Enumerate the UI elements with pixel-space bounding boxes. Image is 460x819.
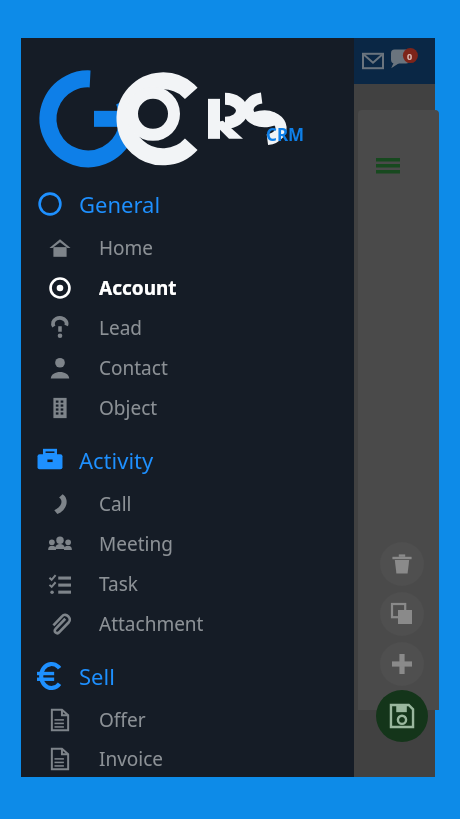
- button[interactable]: General: [21, 180, 354, 228]
- button[interactable]: Account: [21, 268, 354, 308]
- button[interactable]: Meeting: [21, 524, 354, 564]
- staticText: Lead: [99, 315, 143, 341]
- button[interactable]: Messages: [360, 48, 386, 74]
- button[interactable]: Object: [21, 388, 354, 428]
- button[interactable]: Attachment: [21, 604, 354, 644]
- staticText: Attachment: [99, 611, 204, 637]
- button[interactable]: Copy: [380, 592, 424, 636]
- staticText: Meeting: [99, 531, 173, 557]
- button[interactable]: Home: [21, 228, 354, 268]
- staticText: Account: [99, 275, 177, 301]
- button[interactable]: Task: [21, 564, 354, 604]
- staticText: Object: [99, 395, 158, 421]
- staticText: General: [79, 189, 161, 219]
- button[interactable]: Sell: [21, 652, 354, 700]
- button[interactable]: Menu: [368, 146, 408, 186]
- staticText: 0: [407, 50, 413, 62]
- button[interactable]: Lead: [21, 308, 354, 348]
- button[interactable]: Offer: [21, 700, 354, 740]
- staticText: Contact: [99, 355, 168, 381]
- button[interactable]: Call: [21, 484, 354, 524]
- button[interactable]: Save: [376, 690, 428, 742]
- button[interactable]: Delete: [380, 542, 424, 586]
- staticText: Offer: [99, 707, 146, 733]
- button[interactable]: Notifications: [390, 46, 420, 76]
- staticText: Sell: [79, 661, 115, 691]
- staticText: Home: [99, 235, 154, 261]
- staticText: CRM: [266, 123, 305, 146]
- button[interactable]: Invoice: [21, 740, 354, 777]
- staticText: Call: [99, 491, 132, 517]
- staticText: Activity: [79, 445, 154, 475]
- staticText: Invoice: [99, 746, 164, 772]
- button[interactable]: Activity: [21, 436, 354, 484]
- button[interactable]: Contact: [21, 348, 354, 388]
- button[interactable]: Add: [380, 642, 424, 686]
- staticText: Task: [99, 571, 138, 597]
